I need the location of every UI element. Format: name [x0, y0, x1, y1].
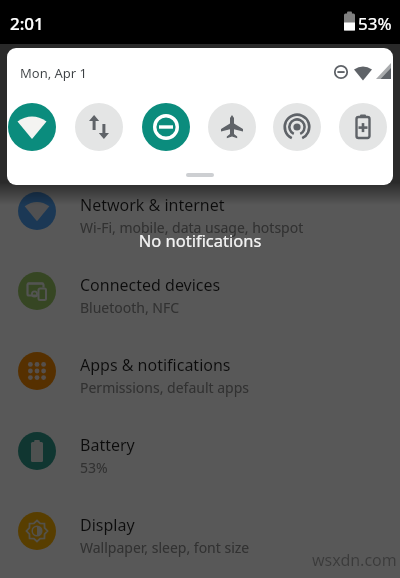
staticText: Apps & notifications	[80, 354, 231, 376]
staticText: Display	[80, 514, 135, 536]
button[interactable]	[142, 103, 190, 151]
button[interactable]: Connected devices	[0, 251, 400, 331]
button[interactable]: Network & internet	[0, 171, 400, 251]
staticText: Network & internet	[80, 194, 225, 216]
staticText: 53%	[80, 458, 108, 477]
staticText: Wallpaper, sleep, font size	[80, 538, 250, 557]
button[interactable]	[273, 103, 321, 151]
staticText: No notifications	[0, 229, 400, 251]
staticText: wsxdn.com	[312, 549, 397, 571]
button[interactable]	[339, 103, 387, 151]
button[interactable]	[75, 103, 123, 151]
staticText: Wi-Fi, mobile, data usage, hotspot	[80, 218, 304, 237]
button[interactable]: Display	[0, 491, 400, 571]
staticText: 53%	[358, 12, 392, 35]
staticText: 2:01	[10, 12, 44, 35]
button[interactable]: Battery	[0, 411, 400, 491]
staticText: Battery	[80, 434, 135, 456]
staticText: Permissions, default apps	[80, 378, 250, 397]
button[interactable]	[8, 103, 56, 151]
button[interactable]: Apps & notifications	[0, 331, 400, 411]
staticText: Connected devices	[80, 274, 221, 296]
button[interactable]	[208, 103, 256, 151]
staticText: Bluetooth, NFC	[80, 298, 180, 317]
staticText: Mon, Apr 1	[20, 64, 88, 82]
